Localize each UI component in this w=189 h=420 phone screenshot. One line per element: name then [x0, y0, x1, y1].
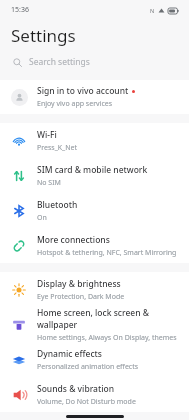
- button[interactable]: Home screen, lock screen and wallpaper: [0, 307, 189, 342]
- staticText: SIM card & mobile network: [37, 164, 148, 176]
- button[interactable]: Sign in to vivo account: [0, 80, 189, 114]
- staticText: Eye Protection, Dark Mode: [37, 292, 125, 302]
- staticText: Display & brightness: [37, 278, 121, 290]
- staticText: Sounds & vibration: [37, 383, 115, 395]
- staticText: Home screen, lock screen & wallpaper: [37, 307, 178, 331]
- button[interactable]: Bluetooth: [0, 193, 189, 228]
- staticText: Settings: [11, 24, 76, 47]
- other: Dynamic effects: [12, 353, 26, 367]
- staticText: Search settings: [29, 56, 90, 68]
- staticText: Wi-Fi: [37, 129, 57, 141]
- other: Home screen, lock screen and wallpaper: [12, 318, 26, 332]
- staticText: Home settings, Always On Display, themes: [37, 333, 177, 342]
- button[interactable]: Search settings: [0, 50, 189, 74]
- staticText: Sign in to vivo account: [37, 85, 129, 97]
- other: Bluetooth: [12, 204, 26, 218]
- staticText: More connections: [37, 234, 110, 246]
- staticText: 15:36: [11, 5, 29, 15]
- button[interactable]: More connections: [0, 228, 189, 263]
- staticText: Hotspot & tethering, NFC, Smart Mirrorin…: [37, 248, 177, 258]
- button[interactable]: Sounds and vibration: [0, 377, 189, 412]
- staticText: On: [37, 213, 47, 223]
- staticText: N: [150, 7, 155, 14]
- button[interactable]: SIM card and mobile network: [0, 158, 189, 193]
- button[interactable]: Wi-Fi: [0, 123, 189, 158]
- staticText: No SIM: [37, 178, 61, 188]
- staticText: Bluetooth: [37, 199, 78, 211]
- other: More connections: [12, 239, 26, 253]
- other: SIM card and mobile network: [12, 169, 26, 183]
- other: Wi-Fi: [12, 134, 26, 148]
- button[interactable]: Dynamic effects: [0, 342, 189, 377]
- staticText: Personalized animation effects: [37, 362, 139, 372]
- other: Sounds and vibration: [12, 388, 26, 402]
- staticText: Dynamic effects: [37, 348, 103, 360]
- button[interactable]: Display and brightness: [0, 272, 189, 307]
- staticText: Volume, Do Not Disturb mode: [37, 397, 136, 407]
- staticText: Press_K_Net: [37, 143, 77, 153]
- staticText: Enjoy vivo app services: [37, 99, 113, 109]
- other: Display and brightness: [12, 283, 26, 297]
